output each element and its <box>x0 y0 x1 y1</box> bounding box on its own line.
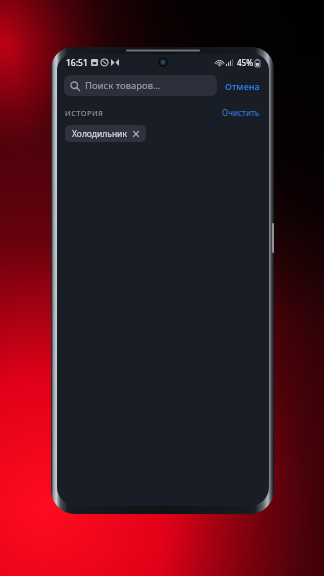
staticText: 45% <box>237 57 253 68</box>
staticText: Очистить <box>222 107 260 118</box>
staticText: 16:51 <box>66 57 88 69</box>
button[interactable]: Remove Холодильник <box>132 130 140 138</box>
button[interactable]: Поиск товаров… <box>64 75 217 96</box>
button[interactable]: Очистить <box>221 105 261 120</box>
staticText: Отмена <box>225 80 260 92</box>
button[interactable]: Отмена <box>224 77 261 95</box>
button[interactable]: Холодильник <box>65 125 146 142</box>
staticText: Холодильник <box>72 128 127 140</box>
staticText: Поиск товаров… <box>85 79 161 92</box>
staticText: ИСТОРИЯ <box>65 108 104 118</box>
